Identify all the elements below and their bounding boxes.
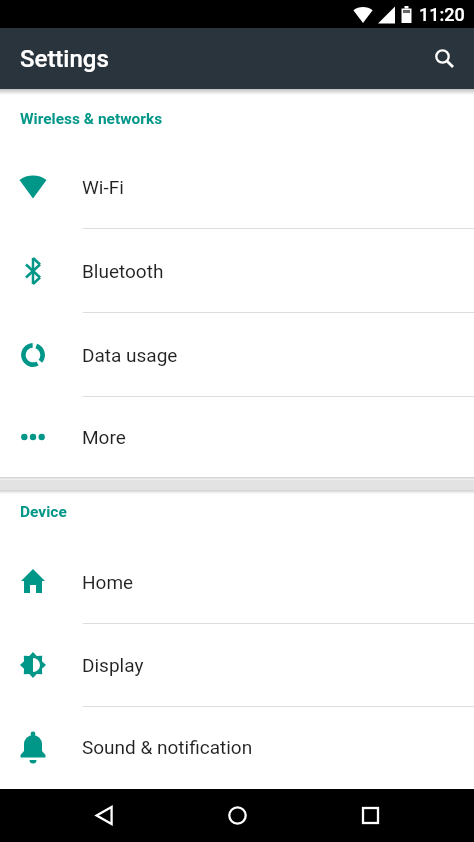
staticText: Wireless & networks [20,110,163,128]
staticText: Settings [20,45,109,73]
button[interactable]: Display [0,624,474,706]
staticText: Wi-Fi [82,176,124,198]
button[interactable]: Home [0,541,474,623]
button[interactable] [171,789,304,842]
staticText: Device [20,503,67,521]
staticText: Display [82,654,144,676]
button[interactable] [38,789,171,842]
button[interactable]: Data usage [0,313,474,396]
staticText: Sound & notification [82,736,253,758]
staticText: Home [82,571,134,593]
button[interactable]: Bluetooth [0,229,474,312]
staticText: 11:20 [419,4,465,25]
button[interactable] [422,36,468,82]
button[interactable]: Sound & notification [0,707,474,787]
staticText: Bluetooth [82,260,164,282]
staticText: Data usage [82,344,178,366]
button[interactable]: Wi-Fi [0,145,474,228]
button[interactable] [304,789,437,842]
staticText: More [82,426,126,448]
button[interactable]: More [0,397,474,477]
